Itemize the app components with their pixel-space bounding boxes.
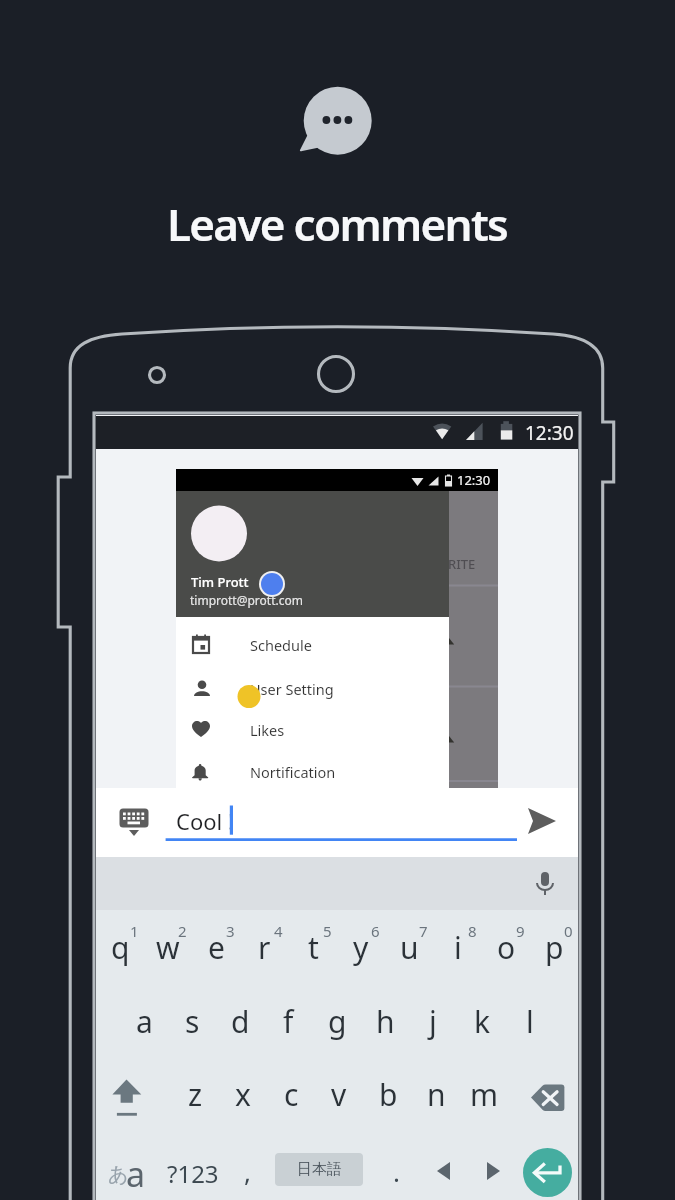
button[interactable]: Keyboard	[118, 806, 150, 838]
staticText: i	[454, 927, 462, 968]
button[interactable]: l	[506, 997, 554, 1045]
staticText: z	[188, 1074, 203, 1115]
staticText: User Setting	[250, 679, 334, 699]
button[interactable]: 0	[544, 907, 592, 955]
button[interactable]: w	[144, 923, 192, 971]
staticText: 3	[226, 921, 235, 941]
staticText: c	[284, 1074, 299, 1115]
button[interactable]: Backspace	[529, 1082, 567, 1114]
button[interactable]: z	[171, 1070, 219, 1118]
staticText: 6	[371, 921, 380, 941]
button[interactable]: 6	[351, 907, 399, 955]
button[interactable]: User Setting	[176, 668, 449, 710]
staticText: Cool !	[176, 806, 234, 836]
staticText: 1	[130, 921, 139, 941]
staticText: x	[235, 1074, 251, 1115]
staticText: v	[331, 1074, 347, 1115]
staticText: 4	[274, 921, 283, 941]
button[interactable]: 日本語	[275, 1153, 363, 1186]
button[interactable]: Comments	[290, 78, 386, 164]
staticText: 8	[468, 921, 477, 941]
button[interactable]: p	[530, 923, 578, 971]
button[interactable]: Likes	[176, 709, 449, 751]
button[interactable]: v	[315, 1070, 363, 1118]
staticText: a	[136, 1001, 153, 1042]
button[interactable]: d	[216, 997, 264, 1045]
staticText: d	[231, 1001, 250, 1042]
button[interactable]: 2	[158, 907, 206, 955]
staticText: Schedule	[250, 635, 312, 655]
button[interactable]: h	[361, 997, 409, 1045]
button[interactable]: .	[393, 1154, 400, 1189]
staticText: 12:30	[525, 420, 574, 446]
button[interactable]: o	[482, 923, 530, 971]
staticText: k	[474, 1001, 491, 1042]
button[interactable]: m	[460, 1070, 508, 1118]
button[interactable]: Shift	[104, 1073, 152, 1123]
staticText: h	[376, 1001, 395, 1042]
button[interactable]: n	[412, 1070, 460, 1118]
staticText: o	[497, 927, 516, 968]
button[interactable]: r	[240, 923, 288, 971]
button[interactable]: x	[219, 1070, 267, 1118]
button[interactable]: u	[385, 923, 433, 971]
button[interactable]: 1	[110, 907, 158, 955]
staticText: 0	[564, 921, 573, 941]
button[interactable]: Send	[524, 804, 560, 838]
button[interactable]: Schedule	[176, 624, 449, 666]
staticText: g	[328, 1001, 347, 1042]
staticText: m	[470, 1074, 499, 1115]
staticText: RITE	[448, 555, 476, 573]
button[interactable]: i	[434, 923, 482, 971]
button[interactable]: 7	[399, 907, 447, 955]
button[interactable]: 5	[303, 907, 351, 955]
staticText: a	[126, 1151, 146, 1197]
button[interactable]: g	[313, 997, 361, 1045]
button[interactable]: 9	[496, 907, 544, 955]
button[interactable]: q	[96, 923, 144, 971]
staticText: timprott@prott.com	[190, 592, 303, 608]
button[interactable]: ?123	[167, 1157, 219, 1190]
button[interactable]: Nortification	[176, 751, 449, 793]
staticText: s	[185, 1001, 200, 1042]
staticText: e	[208, 927, 225, 968]
staticText: Nortification	[250, 762, 336, 782]
staticText: u	[400, 927, 419, 968]
staticText: あ	[108, 1162, 129, 1187]
staticText: t	[308, 927, 319, 968]
staticText: 日本語	[297, 1160, 342, 1179]
button[interactable]: y	[337, 923, 385, 971]
button[interactable]: c	[267, 1070, 315, 1118]
staticText: 5	[323, 921, 332, 941]
button[interactable]: Cursor right	[478, 1157, 506, 1185]
staticText: r	[258, 927, 271, 968]
button[interactable]: j	[409, 997, 457, 1045]
staticText: Leave comments	[167, 194, 508, 254]
button[interactable]: t	[289, 923, 337, 971]
staticText: q	[111, 927, 130, 968]
button[interactable]: Voice input	[530, 869, 560, 899]
button[interactable]: Cursor left	[431, 1157, 459, 1185]
staticText: n	[427, 1074, 446, 1115]
button[interactable]: e	[192, 923, 240, 971]
button[interactable]: s	[168, 997, 216, 1045]
staticText: j	[429, 1001, 437, 1042]
staticText: Likes	[250, 720, 285, 740]
button[interactable]: f	[264, 997, 312, 1045]
button[interactable]: a	[120, 997, 168, 1045]
staticText: 9	[516, 921, 525, 941]
button[interactable]: Enter	[523, 1148, 572, 1197]
button[interactable]: 4	[254, 907, 302, 955]
staticText: b	[379, 1074, 398, 1115]
button[interactable]: k	[458, 997, 506, 1045]
staticText: l	[526, 1001, 534, 1042]
staticText: y	[353, 927, 369, 968]
staticText: w	[156, 927, 180, 968]
button[interactable]: ,	[244, 1154, 251, 1189]
button[interactable]: b	[364, 1070, 412, 1118]
staticText: Tim Prott	[191, 573, 249, 591]
button[interactable]: 8	[448, 907, 496, 955]
button[interactable]: 3	[206, 907, 254, 955]
button[interactable]: あ	[100, 1141, 156, 1197]
staticText: f	[283, 1001, 294, 1042]
